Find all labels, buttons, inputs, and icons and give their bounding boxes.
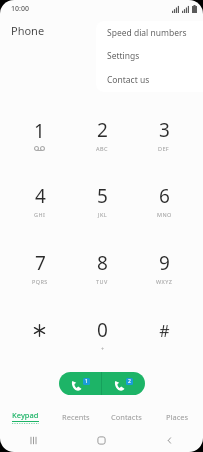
staticText: JKL <box>98 211 107 218</box>
staticText: Phone <box>11 23 45 38</box>
staticText: 5 <box>97 183 108 209</box>
staticText: Recents <box>62 412 90 422</box>
staticText: PQRS <box>32 278 48 285</box>
staticText: Places <box>166 412 189 422</box>
button[interactable]: Recents <box>50 406 101 428</box>
button[interactable]: 4 <box>8 167 71 234</box>
staticText: 7 <box>35 250 46 276</box>
staticText: 1 <box>85 378 88 385</box>
staticText: TUV <box>96 278 108 285</box>
button[interactable]: Recent apps <box>0 428 67 452</box>
button[interactable]: 9 <box>133 234 195 301</box>
button[interactable]: Keypad <box>0 406 50 428</box>
staticText: 0 <box>97 317 108 343</box>
button[interactable]: Call with SIM 2 <box>102 372 145 395</box>
button[interactable]: 8 <box>71 234 133 301</box>
staticText: 4 <box>35 183 46 209</box>
staticText: MNO <box>157 211 172 218</box>
button[interactable]: Contacts <box>101 406 152 428</box>
button[interactable]: 6 <box>133 167 195 234</box>
staticText: 1 <box>34 118 45 144</box>
staticText: Speed dial numbers <box>107 27 187 39</box>
button[interactable]: 2 <box>71 101 133 167</box>
button[interactable]: 3 <box>133 101 195 167</box>
button[interactable]: 7 <box>8 234 71 301</box>
button[interactable]: Back <box>135 428 203 452</box>
button[interactable]: # <box>133 301 195 368</box>
button[interactable]: Home <box>67 428 135 452</box>
staticText: Contacts <box>111 412 142 422</box>
button[interactable]: Call with SIM 1 <box>59 372 101 395</box>
staticText: WXYZ <box>156 278 173 285</box>
staticText: 8 <box>97 250 108 276</box>
staticText: DEF <box>158 145 170 152</box>
staticText: Contact us <box>107 74 150 86</box>
staticText: ABC <box>96 145 108 152</box>
staticText: # <box>159 320 170 342</box>
button[interactable]: 0 <box>71 301 133 368</box>
button[interactable]: 1 <box>8 101 71 167</box>
button[interactable] <box>8 301 71 368</box>
staticText: 3 <box>159 117 170 143</box>
button[interactable]: Places <box>152 406 203 428</box>
staticText: 2 <box>128 378 131 385</box>
staticText: 9 <box>159 250 170 276</box>
staticText: 2 <box>97 117 108 143</box>
button[interactable]: Settings <box>96 44 203 68</box>
staticText: 6 <box>159 183 170 209</box>
staticText: 10:00 <box>11 4 29 14</box>
button[interactable]: 5 <box>71 167 133 234</box>
staticText: + <box>101 345 105 352</box>
staticText: Settings <box>107 50 140 62</box>
button[interactable]: Contact us <box>96 68 203 92</box>
button[interactable]: Speed dial numbers <box>96 21 203 44</box>
staticText: GHI <box>34 211 46 218</box>
staticText: Keypad <box>12 410 39 420</box>
